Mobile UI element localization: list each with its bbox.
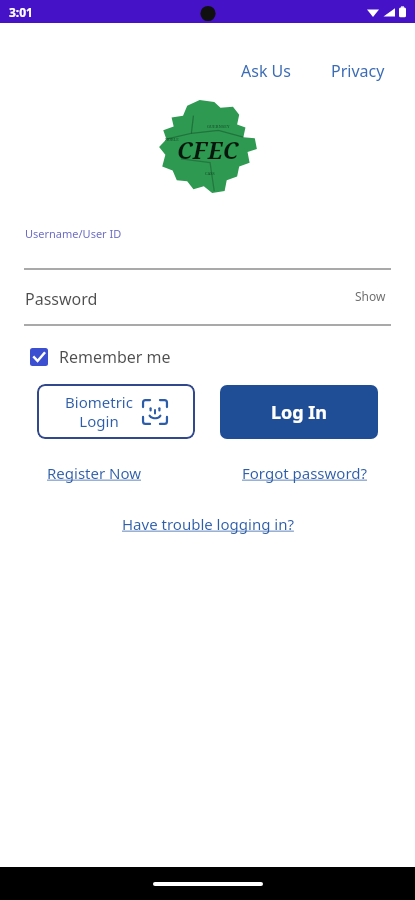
staticText: Ask Us (241, 60, 291, 82)
button[interactable]: Username/User ID (0, 226, 415, 270)
other: Biometric face login (142, 399, 168, 425)
staticText: Remember me (59, 346, 171, 368)
button[interactable]: Password (0, 288, 415, 326)
staticText: Log In (271, 400, 328, 425)
button[interactable]: Ask Us (235, 56, 297, 86)
staticText: Have trouble logging in? (122, 514, 294, 534)
button[interactable]: Have trouble logging in? (119, 511, 297, 537)
button[interactable]: Show (351, 289, 390, 309)
staticText: Forgot password? (242, 463, 368, 483)
staticText: Username/User ID (25, 226, 122, 241)
button[interactable]: Forgot password? (239, 460, 371, 486)
staticText: NOBLE (165, 137, 179, 142)
button[interactable]: Privacy (325, 56, 391, 86)
button[interactable]: Biometric Login (37, 384, 195, 439)
staticText: Privacy (331, 60, 385, 82)
staticText: Register Now (47, 463, 142, 483)
staticText: Password (25, 288, 98, 310)
staticText: GUERNSEY (207, 124, 230, 129)
button[interactable]: Remember me (28, 342, 173, 372)
staticText: CASS (205, 171, 215, 176)
staticText: Biometric Login (65, 392, 133, 431)
staticText: CFEC (177, 134, 239, 165)
staticText: Show (355, 288, 386, 304)
staticText: 3:01 (9, 4, 33, 20)
button[interactable]: Register Now (44, 460, 145, 486)
button[interactable]: Log In (220, 385, 378, 439)
